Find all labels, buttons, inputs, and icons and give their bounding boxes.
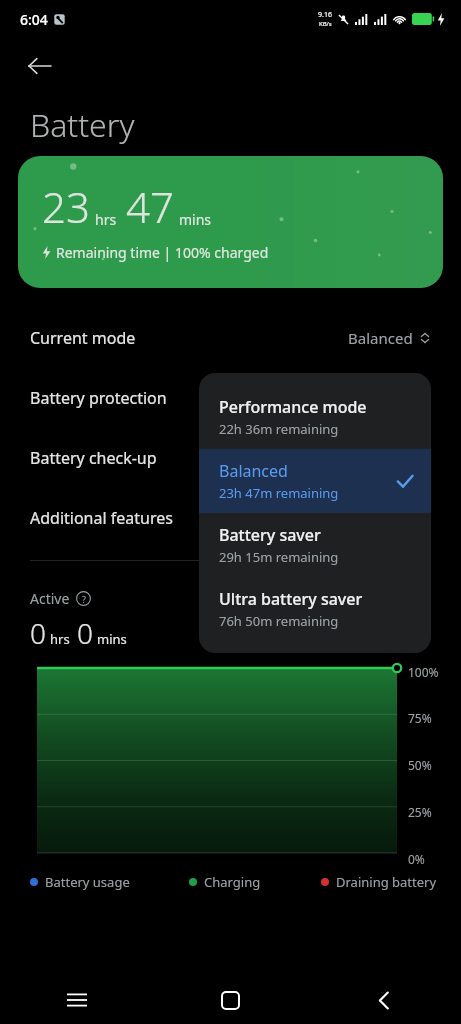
staticText: 23h 47m remaining [219, 484, 339, 502]
staticText: 6:04 [20, 10, 48, 29]
button[interactable]: Recent apps [0, 976, 153, 1024]
staticText: Battery usage [45, 873, 130, 891]
button[interactable]: Balanced [199, 449, 431, 513]
staticText: Performance mode [219, 396, 367, 418]
staticText: 75% [408, 710, 432, 726]
staticText: 76h 50m remaining [219, 612, 339, 630]
staticText: Ultra battery saver [219, 588, 363, 610]
button[interactable]: Home [153, 976, 307, 1024]
button[interactable]: Battery usage [30, 873, 130, 891]
staticText: 29h 15m remaining [219, 548, 339, 566]
staticText: Battery saver [219, 524, 321, 546]
staticText: mins [179, 210, 212, 229]
button[interactable]: Battery protection [0, 368, 461, 428]
button[interactable]: Back [307, 976, 461, 1024]
button[interactable]: Ultra battery saver [199, 577, 431, 641]
staticText: 23 [42, 178, 90, 235]
button[interactable]: Battery check-up [0, 428, 461, 488]
button[interactable]: Current mode [0, 308, 461, 368]
staticText: 47 [126, 178, 174, 235]
staticText: Charging [204, 873, 261, 891]
staticText: KB/s [319, 20, 332, 28]
staticText: 100% [408, 664, 439, 680]
staticText: Battery protection [30, 387, 167, 409]
staticText: mins [97, 630, 127, 648]
staticText: ? [82, 593, 86, 605]
staticText: hrs [95, 210, 117, 229]
staticText: Remaining time | 100% charged [56, 243, 269, 262]
staticText: 22h 36m remaining [219, 420, 339, 438]
staticText: 50% [408, 757, 432, 773]
staticText: Current mode [30, 327, 136, 349]
staticText: Battery check-up [30, 447, 157, 469]
staticText: 25% [408, 804, 432, 820]
button[interactable]: Charging [189, 873, 261, 891]
staticText: 9.16 [318, 10, 332, 20]
staticText: Balanced [348, 328, 413, 348]
staticText: Active [30, 589, 70, 608]
staticText: 0 [30, 614, 46, 652]
staticText: Battery [30, 103, 135, 147]
button[interactable]: Draining battery [321, 873, 437, 891]
staticText: 0% [408, 851, 425, 867]
staticText: hrs [50, 630, 70, 648]
button[interactable]: Battery saver [199, 513, 431, 577]
staticText: Draining battery [336, 873, 437, 891]
button[interactable]: Additional features [0, 488, 461, 548]
button[interactable]: 23 [18, 156, 443, 288]
staticText: Balanced [219, 460, 288, 482]
staticText: 0 [77, 614, 93, 652]
button[interactable]: Back [12, 38, 68, 94]
button[interactable]: Help [76, 591, 91, 606]
staticText: Additional features [30, 507, 173, 529]
button[interactable]: Performance mode [199, 385, 431, 449]
